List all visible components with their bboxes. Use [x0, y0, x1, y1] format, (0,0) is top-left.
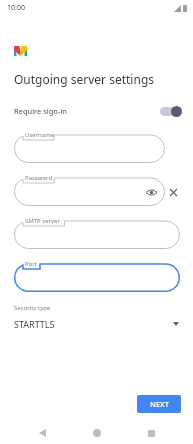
button[interactable]: Password	[14, 172, 165, 206]
button[interactable]: Back	[29, 422, 55, 444]
button[interactable]: SMTP server	[14, 215, 180, 249]
button[interactable]: NEXT	[137, 395, 181, 413]
button[interactable]: Clear password	[165, 184, 181, 200]
staticText: Security type	[14, 304, 51, 312]
staticText: Outgoing server settings	[14, 71, 155, 87]
button[interactable]: Security type	[0, 304, 193, 330]
button[interactable]: Show password	[144, 185, 158, 199]
button[interactable]: Require sign-in	[0, 102, 193, 120]
staticText: NEXT	[150, 399, 169, 409]
staticText: STARTTLS	[14, 318, 55, 330]
button[interactable]: Home	[84, 422, 110, 444]
staticText: SMTP server	[25, 217, 60, 225]
staticText: Username	[25, 131, 55, 139]
button[interactable]: Username	[14, 129, 165, 163]
staticText: Port	[25, 260, 37, 268]
button[interactable]: Recent apps	[138, 422, 164, 444]
staticText: 10:00	[7, 3, 25, 13]
button[interactable]: Port	[14, 258, 180, 292]
staticText: Password	[25, 174, 53, 182]
staticText: Require sign-in	[14, 106, 67, 116]
